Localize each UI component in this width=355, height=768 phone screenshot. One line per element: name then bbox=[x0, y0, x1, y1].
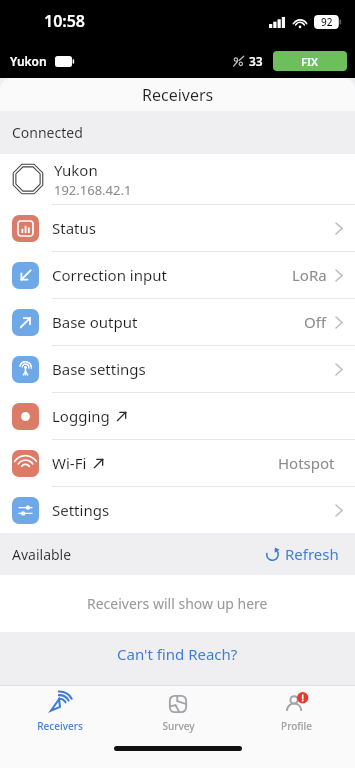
staticText: Base output bbox=[52, 312, 138, 332]
staticText: 192.168.42.1 bbox=[54, 181, 132, 199]
button[interactable]: Yukon bbox=[0, 154, 355, 204]
button[interactable]: Refresh bbox=[261, 540, 343, 568]
button[interactable]: Receivers bbox=[0, 686, 119, 738]
button[interactable]: Base output bbox=[0, 299, 355, 345]
staticText: FIX bbox=[301, 54, 319, 69]
button[interactable]: Wi-Fi bbox=[0, 440, 355, 486]
staticText: LoRa bbox=[292, 265, 327, 285]
staticText: Yukon bbox=[10, 53, 47, 69]
button[interactable]: Correction input bbox=[0, 252, 355, 298]
button[interactable]: Survey bbox=[119, 686, 237, 738]
staticText: Profile bbox=[281, 719, 312, 733]
staticText: Logging bbox=[52, 406, 110, 426]
staticText: Hotspot bbox=[278, 453, 335, 473]
button[interactable]: Profile bbox=[237, 686, 355, 738]
staticText: Off bbox=[304, 312, 327, 332]
staticText: Receivers bbox=[142, 84, 214, 106]
staticText: Yukon bbox=[54, 160, 98, 180]
button[interactable]: Status bbox=[0, 205, 355, 251]
staticText: Can't find Reach? bbox=[117, 644, 238, 664]
button[interactable]: FIX bbox=[273, 51, 347, 71]
staticText: Connected bbox=[12, 123, 83, 142]
button[interactable]: Can't find Reach? bbox=[0, 632, 355, 676]
button[interactable]: Base settings bbox=[0, 346, 355, 392]
staticText: Survey bbox=[162, 719, 195, 733]
staticText: Status bbox=[52, 218, 96, 238]
staticText: 10:58 bbox=[44, 10, 86, 32]
staticText: Settings bbox=[52, 500, 110, 520]
staticText: 92 bbox=[321, 15, 333, 29]
staticText: Wi-Fi bbox=[52, 453, 87, 473]
staticText: 33 bbox=[249, 53, 263, 69]
staticText: Receivers will show up here bbox=[87, 594, 268, 613]
button[interactable]: Settings bbox=[0, 487, 355, 533]
staticText: Correction input bbox=[52, 265, 167, 285]
button[interactable]: Logging bbox=[0, 393, 355, 439]
staticText: Refresh bbox=[285, 544, 339, 564]
staticText: Available bbox=[12, 545, 72, 564]
staticText: Base settings bbox=[52, 359, 146, 379]
staticText: Receivers bbox=[37, 719, 83, 733]
